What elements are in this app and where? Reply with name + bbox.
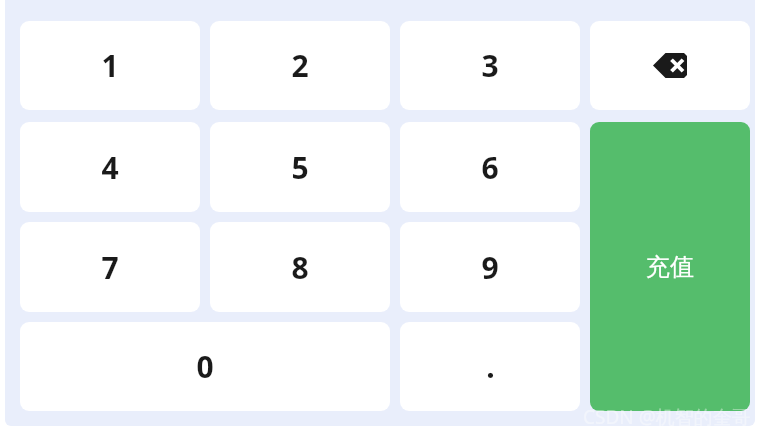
staticText: 4 (101, 147, 119, 188)
button[interactable]: 7 (20, 222, 200, 312)
staticText: 3 (481, 45, 499, 86)
staticText: . (486, 346, 495, 387)
staticText: CSDN @机智的奎哥 (583, 404, 751, 430)
button[interactable]: 6 (400, 122, 580, 212)
staticText: 7 (101, 247, 119, 288)
button[interactable]: . (400, 322, 580, 411)
button[interactable]: Backspace (590, 21, 750, 110)
staticText: 1 (101, 45, 119, 86)
button[interactable]: 4 (20, 122, 200, 212)
staticText: 9 (481, 247, 499, 288)
staticText: 0 (196, 346, 214, 387)
staticText: 充值 (646, 252, 694, 282)
staticText: 2 (291, 45, 309, 86)
staticText: 5 (291, 147, 309, 188)
button[interactable]: 5 (210, 122, 390, 212)
button[interactable]: 0 (20, 322, 390, 411)
button[interactable]: 1 (20, 21, 200, 110)
staticText: 6 (481, 147, 499, 188)
staticText: 8 (291, 247, 309, 288)
button[interactable]: 3 (400, 21, 580, 110)
button[interactable]: 2 (210, 21, 390, 110)
button[interactable]: 充值 (590, 122, 750, 411)
button[interactable]: 8 (210, 222, 390, 312)
button[interactable]: 9 (400, 222, 580, 312)
